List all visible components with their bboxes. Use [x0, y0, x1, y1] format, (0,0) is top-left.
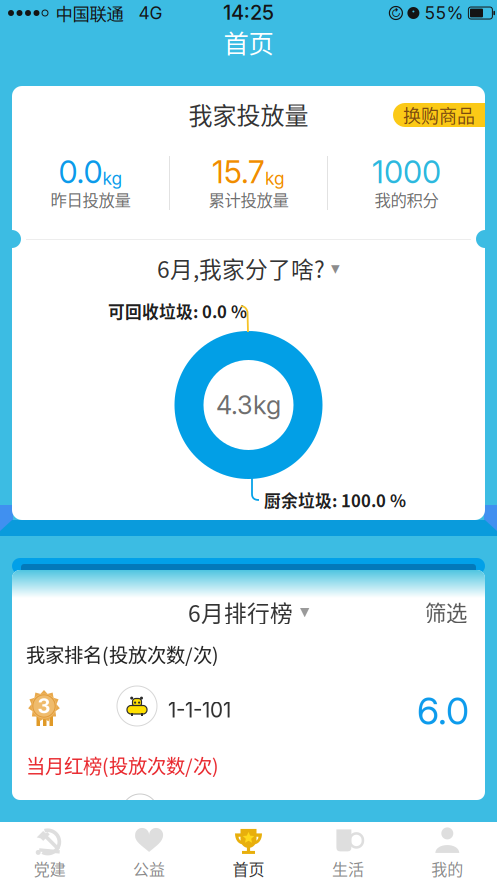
- staticText: 0.0: [58, 153, 102, 190]
- staticText: 首页: [232, 857, 264, 880]
- staticText: 3: [37, 694, 50, 718]
- staticText: 我的: [431, 857, 463, 880]
- button[interactable]: 首页: [0, 26, 497, 58]
- staticText: ↻: [391, 6, 401, 19]
- button[interactable]: 3: [12, 686, 485, 734]
- button[interactable]: 筛选: [425, 599, 483, 625]
- staticText: ▾: [300, 600, 309, 622]
- staticText: 55%: [424, 2, 463, 23]
- staticText: 昨日投放量: [50, 187, 130, 211]
- staticText: 15.7: [212, 153, 265, 190]
- staticText: ▾: [331, 258, 340, 278]
- button[interactable]: 生活: [298, 822, 398, 883]
- staticText: 筛选: [425, 597, 467, 627]
- staticText: 6.0: [417, 688, 469, 734]
- staticText: 我的积分: [374, 187, 438, 211]
- button[interactable]: 我的: [398, 822, 497, 883]
- button[interactable]: 换购商品: [393, 103, 485, 127]
- staticText: 党建: [34, 857, 66, 880]
- button[interactable]: 6月,我家分了啥?: [12, 254, 485, 282]
- staticText: 6月,我家分了啥?: [157, 252, 325, 284]
- staticText: 14:25: [223, 0, 274, 25]
- staticText: 生活: [332, 857, 364, 880]
- staticText: 1000: [372, 153, 441, 190]
- staticText: 我家排名(投放次数/次): [26, 640, 219, 668]
- button[interactable]: 党建: [0, 822, 99, 883]
- staticText: 我家投放量: [188, 97, 308, 131]
- staticText: 4G: [123, 2, 162, 23]
- staticText: 1-1-101: [168, 697, 231, 722]
- button[interactable]: 6月排行榜: [12, 598, 485, 626]
- staticText: kg: [102, 168, 122, 189]
- staticText: 中国联通: [55, 0, 123, 26]
- staticText: 累计投放量: [208, 187, 288, 211]
- staticText: kg: [265, 168, 285, 189]
- staticText: 公益: [133, 857, 165, 880]
- staticText: 首页: [223, 24, 273, 60]
- staticText: 4.3kg: [216, 390, 281, 420]
- button[interactable]: 首页: [199, 822, 298, 883]
- staticText: 可回收垃圾: 0.0 %: [108, 299, 247, 323]
- staticText: 6月排行榜: [188, 596, 293, 628]
- staticText: 当月红榜(投放次数/次): [26, 751, 219, 779]
- staticText: 换购商品: [403, 102, 475, 128]
- button[interactable]: 公益: [99, 822, 199, 883]
- staticText: 厨余垃圾: 100.0 %: [264, 488, 406, 512]
